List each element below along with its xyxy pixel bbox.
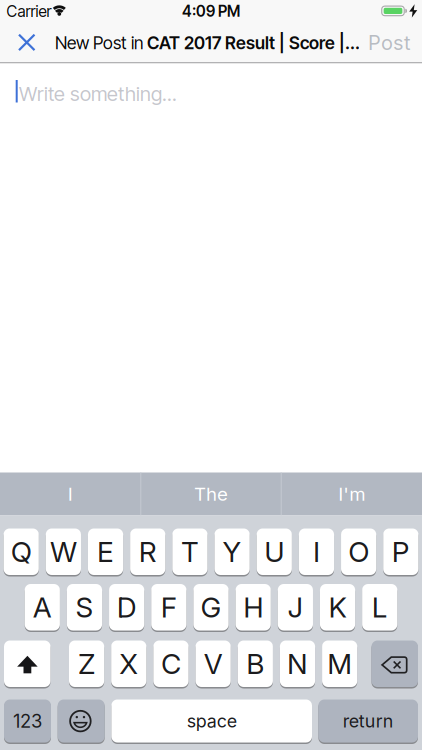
staticText: P: [392, 535, 410, 569]
button[interactable]: K: [320, 583, 355, 631]
staticText: U: [264, 535, 284, 569]
button[interactable]: space: [111, 698, 312, 743]
staticText: B: [246, 647, 264, 681]
staticText: E: [97, 535, 114, 569]
button[interactable]: U: [257, 527, 292, 576]
button[interactable]: Post: [368, 31, 411, 55]
staticText: J: [287, 590, 303, 624]
staticText: C: [161, 647, 181, 681]
staticText: R: [139, 535, 157, 569]
button[interactable]: N: [280, 639, 315, 688]
staticText: O: [348, 535, 369, 569]
button[interactable]: return: [318, 698, 418, 743]
button[interactable]: O: [341, 527, 376, 576]
staticText: L: [372, 590, 388, 624]
button[interactable]: V: [195, 639, 231, 688]
button[interactable]: Shift: [4, 639, 50, 688]
staticText: Write something...: [19, 81, 177, 106]
button[interactable]: F: [151, 583, 186, 631]
staticText: space: [187, 710, 237, 732]
staticText: W: [50, 535, 77, 569]
staticText: S: [75, 590, 93, 624]
button[interactable]: 123: [4, 698, 51, 743]
button[interactable]: P: [383, 527, 418, 576]
staticText: New Post in CAT 2017 Result | Score |...: [55, 32, 360, 53]
button[interactable]: I'm: [283, 472, 421, 515]
staticText: N: [287, 647, 308, 681]
staticText: K: [329, 590, 347, 624]
staticText: 4:09 PM: [182, 2, 240, 20]
button[interactable]: Z: [69, 639, 104, 688]
staticText: I'm: [338, 483, 365, 505]
staticText: Carrier: [6, 2, 51, 21]
button[interactable]: Q: [4, 527, 39, 576]
staticText: G: [200, 590, 221, 624]
button[interactable]: X: [111, 639, 146, 688]
staticText: H: [243, 590, 263, 624]
button[interactable]: B: [238, 639, 273, 688]
staticText: Post: [368, 31, 411, 55]
staticText: F: [161, 590, 177, 624]
button[interactable]: H: [236, 583, 271, 631]
staticText: Y: [223, 535, 242, 569]
button[interactable]: R: [130, 527, 165, 576]
staticText: return: [343, 710, 394, 732]
staticText: V: [204, 647, 223, 681]
button[interactable]: A: [25, 583, 60, 631]
button[interactable]: L: [362, 583, 397, 631]
staticText: Q: [11, 535, 32, 569]
button[interactable]: Emoji: [58, 698, 105, 743]
button[interactable]: Y: [214, 527, 250, 576]
staticText: I: [68, 483, 73, 505]
button[interactable]: Delete: [371, 639, 418, 688]
staticText: A: [33, 590, 52, 624]
button[interactable]: S: [67, 583, 102, 631]
staticText: T: [181, 535, 199, 569]
button[interactable]: I: [1, 472, 139, 515]
staticText: M: [327, 647, 352, 681]
button[interactable]: C: [153, 639, 189, 688]
staticText: X: [119, 647, 138, 681]
button[interactable]: M: [322, 639, 357, 688]
staticText: Z: [78, 647, 95, 681]
button[interactable]: I: [299, 527, 334, 576]
staticText: 123: [13, 710, 42, 732]
button[interactable]: W: [46, 527, 81, 576]
staticText: D: [117, 590, 137, 624]
staticText: I: [313, 535, 320, 569]
button[interactable]: G: [193, 583, 229, 631]
button[interactable]: Close: [14, 30, 39, 55]
button[interactable]: E: [88, 527, 123, 576]
button[interactable]: D: [109, 583, 144, 631]
button[interactable]: The: [142, 472, 280, 515]
staticText: The: [194, 483, 228, 505]
button[interactable]: J: [278, 583, 313, 631]
button[interactable]: T: [172, 527, 207, 576]
